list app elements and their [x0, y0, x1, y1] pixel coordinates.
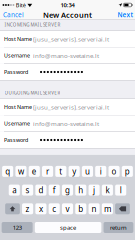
button[interactable]: g	[62, 185, 73, 196]
button[interactable]: f	[49, 185, 60, 196]
button[interactable]: d	[35, 185, 46, 196]
staticText: OUTGOING MAIL SERVER	[4, 90, 60, 96]
staticText: Next	[117, 10, 133, 19]
staticText: m	[104, 203, 111, 214]
button[interactable]: j	[89, 185, 100, 196]
button[interactable]: Username	[0, 115, 135, 131]
staticText: space	[60, 223, 76, 231]
button[interactable]: n	[88, 203, 100, 214]
staticText: q	[5, 166, 10, 177]
button[interactable]: h	[75, 185, 86, 196]
staticText: z	[26, 203, 30, 214]
staticText: [jusu_serveris].serveriai.lt	[33, 35, 109, 43]
button[interactable]: o	[108, 166, 120, 177]
staticText: Password	[4, 68, 28, 76]
button[interactable]: s	[22, 185, 33, 196]
button[interactable]: y	[69, 166, 80, 177]
button[interactable]: Cancel	[0, 10, 27, 19]
staticText: b	[78, 203, 83, 214]
staticText: k	[105, 185, 109, 196]
button[interactable]: e	[29, 166, 40, 177]
staticText: d	[38, 185, 43, 196]
button[interactable]: i	[95, 166, 106, 177]
staticText: Host Name	[4, 103, 32, 111]
staticText: g	[65, 185, 70, 196]
button[interactable]: u	[82, 166, 93, 177]
button[interactable]: w	[15, 166, 26, 177]
staticText: l	[120, 185, 122, 196]
button[interactable]: r	[42, 166, 53, 177]
staticText: Cancel	[3, 10, 24, 19]
button[interactable]: Shift	[5, 203, 20, 214]
button[interactable]: m	[102, 203, 113, 214]
button[interactable]: l	[115, 185, 126, 196]
staticText: p	[125, 166, 130, 177]
staticText: h	[78, 185, 83, 196]
staticText: Bitė	[16, 1, 26, 9]
staticText: o	[112, 166, 117, 177]
button[interactable]: space	[35, 222, 101, 233]
button[interactable]: z	[22, 203, 33, 214]
staticText: r	[46, 166, 49, 177]
staticText: 10:34	[60, 1, 74, 9]
button[interactable]: Host Name	[0, 31, 135, 47]
staticText: Password	[4, 136, 28, 144]
button[interactable]: a	[9, 185, 20, 196]
staticText: e	[32, 166, 37, 177]
button[interactable]: Delete	[115, 203, 130, 214]
staticText: i	[100, 166, 102, 177]
button[interactable]: v	[62, 203, 73, 214]
staticText: a	[12, 185, 16, 196]
button[interactable]: q	[2, 166, 13, 177]
staticText: t	[59, 166, 62, 177]
button[interactable]: c	[49, 203, 60, 214]
staticText: u	[85, 166, 90, 177]
staticText: info@mano-svetaine.lt	[33, 51, 99, 60]
staticText: j	[93, 185, 95, 196]
staticText: x	[39, 203, 43, 214]
button[interactable]: k	[102, 185, 113, 196]
staticText: info@mano-svetaine.lt	[33, 119, 99, 128]
staticText: return	[110, 223, 127, 231]
staticText: c	[52, 203, 56, 214]
staticText: n	[92, 203, 97, 214]
button[interactable]: t	[55, 166, 66, 177]
button[interactable]: b	[75, 203, 86, 214]
button[interactable]: Password	[0, 64, 135, 80]
staticText: Username	[4, 52, 30, 59]
button[interactable]: Next	[116, 10, 135, 19]
staticText: Username	[4, 120, 30, 127]
button[interactable]: return	[104, 222, 133, 233]
staticText: New Account	[43, 10, 92, 20]
button[interactable]: Username	[0, 47, 135, 63]
staticText: [jusu_serveris].serveriai.lt	[33, 103, 109, 111]
staticText: Host Name	[4, 35, 32, 43]
staticText: y	[72, 166, 76, 177]
staticText: f	[53, 185, 56, 196]
staticText: 123	[13, 223, 22, 231]
button[interactable]: x	[35, 203, 46, 214]
button[interactable]: Password	[0, 132, 135, 148]
button[interactable]: p	[122, 166, 133, 177]
staticText: v	[65, 203, 69, 214]
staticText: s	[26, 185, 30, 196]
button[interactable]: Host Name	[0, 99, 135, 115]
staticText: w	[18, 166, 24, 177]
staticText: INCOMING MAIL SERVER	[4, 22, 60, 28]
button[interactable]: 123	[2, 222, 33, 233]
